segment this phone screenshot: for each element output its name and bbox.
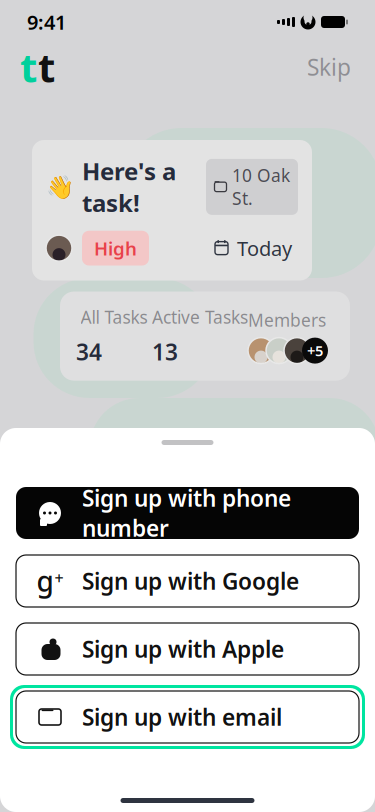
staticText: 13 — [152, 337, 178, 367]
staticText: High — [94, 236, 137, 260]
staticText: Skip — [307, 52, 351, 82]
button[interactable]: g — [16, 555, 359, 607]
staticText: 👋 — [46, 174, 74, 200]
button[interactable]: Sign up with email — [10, 685, 365, 749]
button[interactable]: Skip — [301, 46, 357, 88]
staticText: g — [36, 562, 53, 600]
button[interactable]: Sign up with phone number — [16, 487, 359, 539]
staticText: 9:41 — [27, 9, 66, 35]
staticText: Here's a task! — [82, 155, 176, 219]
staticText: Sign up with email — [82, 702, 282, 732]
staticText: All Tasks — [80, 305, 147, 328]
staticText: Sign up with phone number — [82, 483, 291, 543]
staticText: 34 — [76, 337, 102, 367]
staticText: + — [54, 567, 63, 589]
button[interactable]: Sign up with Apple — [16, 623, 359, 675]
staticText: Active Tasks — [152, 305, 248, 328]
staticText: Sign up with Google — [82, 566, 299, 596]
staticText: t — [20, 40, 37, 93]
staticText: Members — [248, 309, 326, 332]
button[interactable]: Home — [18, 40, 57, 93]
staticText: Today — [237, 235, 292, 261]
staticText: t — [38, 40, 55, 93]
staticText: 10 Oak St. — [232, 164, 290, 210]
staticText: Sign up with Apple — [82, 634, 284, 664]
staticText: +5 — [307, 341, 323, 360]
